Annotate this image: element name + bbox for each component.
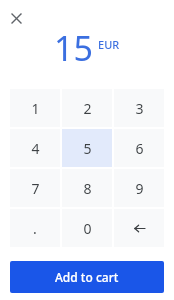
button[interactable]: 4 bbox=[10, 129, 60, 167]
staticText: 7 bbox=[31, 179, 40, 198]
staticText: 2 bbox=[83, 99, 92, 118]
staticText: 3 bbox=[135, 99, 144, 118]
staticText: 4 bbox=[31, 139, 40, 158]
staticText: 9 bbox=[135, 179, 144, 198]
button[interactable]: 8 bbox=[62, 169, 112, 207]
staticText: 15 bbox=[54, 25, 93, 71]
button[interactable]: 2 bbox=[62, 89, 112, 127]
button[interactable]: 3 bbox=[114, 89, 164, 127]
button[interactable]: 1 bbox=[10, 89, 60, 127]
button[interactable]: 9 bbox=[114, 169, 164, 207]
staticText: 1 bbox=[31, 99, 40, 118]
button[interactable]: . bbox=[10, 209, 60, 247]
button[interactable]: 0 bbox=[62, 209, 112, 247]
staticText: 5 bbox=[83, 139, 92, 158]
staticText: EUR bbox=[98, 37, 120, 52]
button[interactable]: Backspace bbox=[114, 209, 164, 247]
staticText: 6 bbox=[135, 139, 144, 158]
staticText: . bbox=[33, 219, 37, 238]
staticText: 0 bbox=[83, 219, 92, 238]
button[interactable]: 7 bbox=[10, 169, 60, 207]
staticText: Add to cart bbox=[55, 269, 119, 285]
button[interactable]: Close bbox=[4, 6, 28, 30]
button[interactable]: Add to cart bbox=[10, 261, 164, 293]
button[interactable]: 6 bbox=[114, 129, 164, 167]
staticText: 8 bbox=[83, 179, 92, 198]
button[interactable]: 5 bbox=[62, 129, 112, 167]
